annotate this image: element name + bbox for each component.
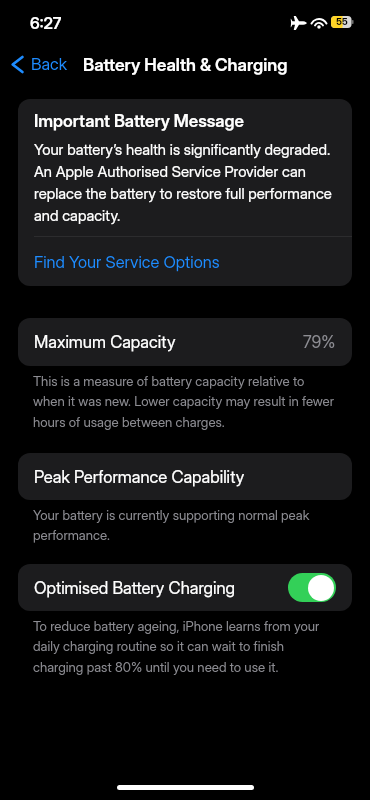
staticText: Peak Performance Capability	[34, 467, 245, 487]
staticText: Your battery’s health is significantly d…	[34, 140, 336, 224]
button[interactable]: Find Your Service Options	[18, 237, 352, 286]
staticText: To reduce battery ageing, iPhone learns …	[33, 618, 336, 676]
staticText: This is a measure of battery capacity re…	[33, 373, 336, 431]
staticText: Your battery is currently supporting nor…	[33, 507, 336, 544]
button[interactable]: Peak Performance Capability	[18, 453, 352, 500]
staticText: Find Your Service Options	[34, 252, 220, 272]
button[interactable]: Maximum Capacity	[18, 318, 352, 366]
other: Airplane mode	[291, 16, 307, 30]
staticText: Important Battery Message	[34, 111, 244, 132]
button[interactable]: Back	[5, 48, 74, 80]
staticText: 55	[334, 16, 350, 28]
other: Battery 55 percent, Low Power Mode	[331, 16, 354, 28]
staticText: 79%	[303, 332, 336, 352]
staticText: Battery Health & Charging	[83, 54, 288, 75]
staticText: Back	[31, 54, 68, 74]
other: Wi-Fi	[311, 15, 327, 28]
staticText: Maximum Capacity	[34, 332, 176, 352]
staticText: Optimised Battery Charging	[34, 578, 236, 598]
staticText: 6:27	[30, 13, 62, 32]
button[interactable]: Optimised Battery Charging, on	[288, 573, 336, 602]
